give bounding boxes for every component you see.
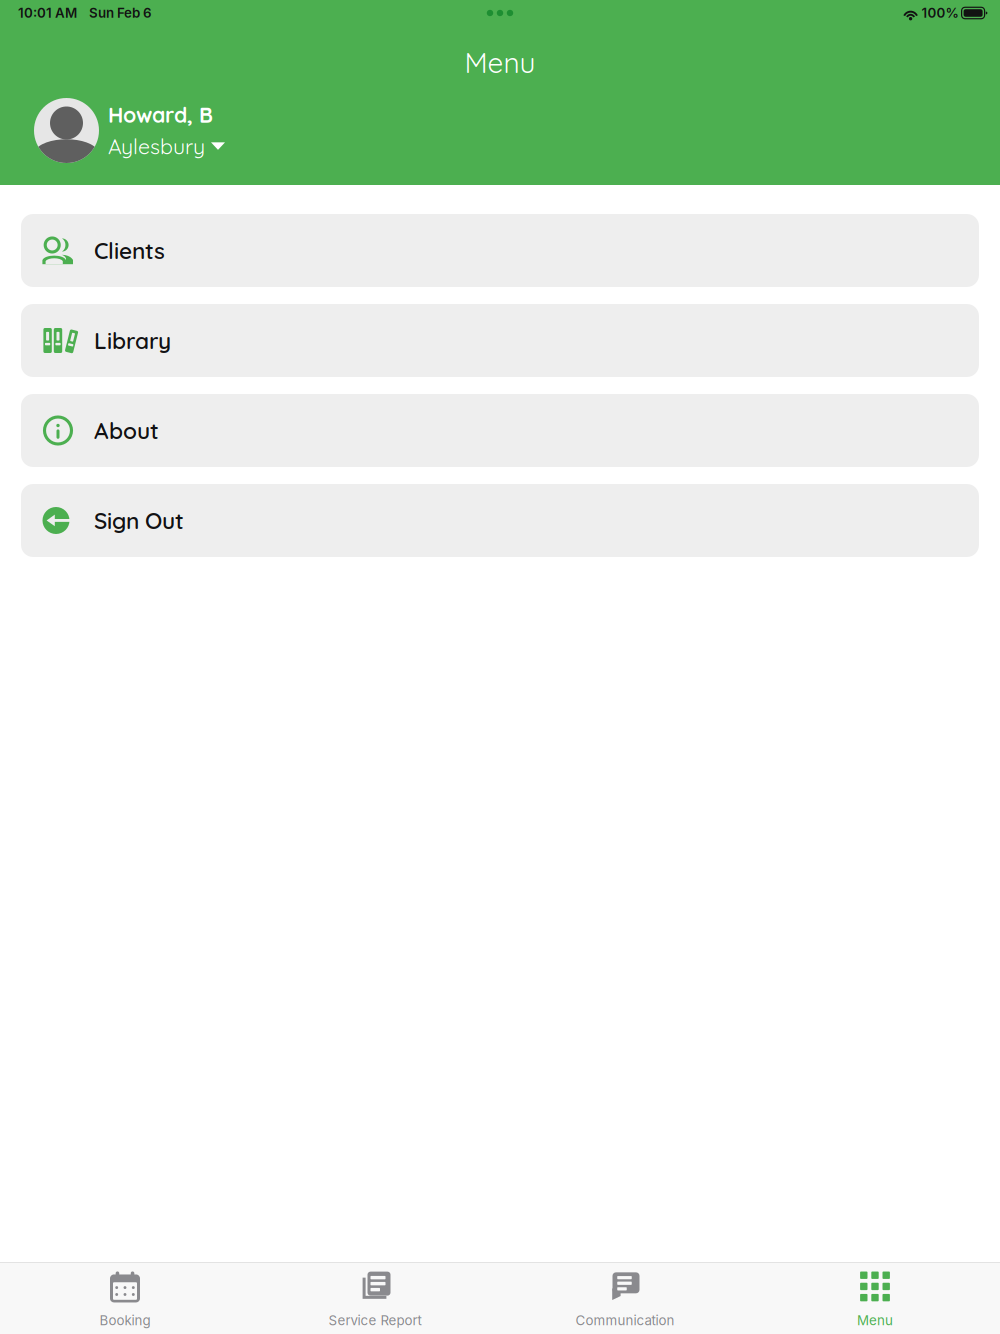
button[interactable]: Library: [21, 304, 979, 377]
staticText: Howard, B: [108, 101, 213, 128]
staticText: 100%: [922, 5, 959, 21]
button[interactable]: Menu: [750, 1263, 1000, 1334]
staticText: 10:01 AM: [18, 5, 77, 21]
staticText: Menu: [464, 45, 535, 80]
staticText: Communication: [575, 1312, 674, 1328]
staticText: Booking: [99, 1312, 150, 1328]
staticText: Menu: [857, 1312, 893, 1328]
staticText: Service Report: [328, 1312, 421, 1328]
staticText: Library: [94, 326, 171, 355]
staticText: Sun Feb 6: [89, 5, 152, 21]
button[interactable]: About: [21, 394, 979, 467]
button[interactable]: Sign Out: [21, 484, 979, 557]
staticText: Sign Out: [94, 506, 184, 535]
button[interactable]: Service Report: [250, 1263, 500, 1334]
staticText: Aylesbury: [108, 133, 205, 160]
staticText: Clients: [94, 236, 165, 265]
button[interactable]: Booking: [0, 1263, 250, 1334]
button[interactable]: Communication: [500, 1263, 750, 1334]
button[interactable]: Clients: [21, 214, 979, 287]
staticText: About: [94, 416, 159, 445]
